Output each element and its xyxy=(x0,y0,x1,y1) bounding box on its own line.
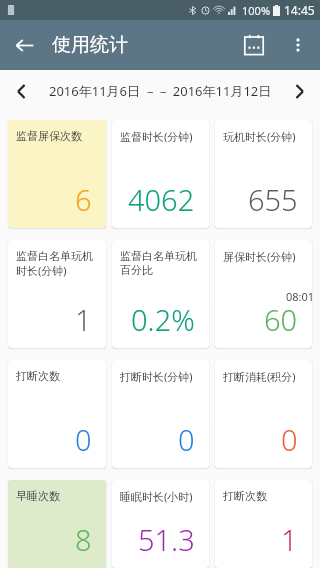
button[interactable]: 打断消耗(积分) xyxy=(215,360,312,468)
staticText: 早睡次数 xyxy=(16,489,60,503)
staticText: 60 xyxy=(264,300,298,339)
staticText: 2016年11月6日 －－ 2016年11月12日 xyxy=(49,82,272,100)
staticText: 使用统计 xyxy=(52,33,128,57)
staticText: 监督屏保次数 xyxy=(16,129,82,143)
staticText: 100% xyxy=(242,3,271,18)
staticText: 监督白名单玩机 时长(分钟) xyxy=(16,249,93,278)
staticText: 4062 xyxy=(128,180,195,219)
staticText: 打断消耗(积分) xyxy=(223,369,296,384)
staticText: 1 xyxy=(281,520,298,559)
staticText: 08:01 xyxy=(286,289,315,304)
staticText: 655 xyxy=(248,180,298,219)
button[interactable]: 打断次数 xyxy=(215,480,312,568)
button[interactable]: Next week xyxy=(278,70,320,112)
button[interactable]: Back xyxy=(0,21,48,69)
button[interactable]: Calendar xyxy=(230,21,278,69)
staticText: 睡眠时长(小时) xyxy=(120,489,193,504)
button[interactable]: 打断次数 xyxy=(8,360,106,468)
staticText: 51.3 xyxy=(138,520,195,559)
button[interactable]: 早睡次数 xyxy=(8,480,106,568)
button[interactable]: 打断时长(分钟) xyxy=(112,360,209,468)
staticText: 0 xyxy=(178,420,195,459)
button[interactable]: 监督时长(分钟) xyxy=(112,120,209,228)
button[interactable]: 玩机时长(分钟) xyxy=(215,120,312,228)
staticText: 打断次数 xyxy=(16,369,60,383)
button[interactable]: More options xyxy=(278,25,318,65)
staticText: 14:45 xyxy=(284,2,315,18)
staticText: 8 xyxy=(75,520,92,559)
button[interactable]: Previous week xyxy=(0,70,42,112)
button[interactable]: 监督白名单玩机 时长(分钟) xyxy=(8,240,106,348)
button[interactable]: 睡眠时长(小时) xyxy=(112,480,209,568)
staticText: 监督时长(分钟) xyxy=(120,129,193,144)
button[interactable]: 监督白名单玩机 百分比 xyxy=(112,240,209,348)
button[interactable]: 屏保时长(分钟) xyxy=(215,240,312,348)
staticText: 玩机时长(分钟) xyxy=(223,129,296,144)
staticText: 监督白名单玩机 百分比 xyxy=(120,249,197,277)
staticText: 屏保时长(分钟) xyxy=(223,249,296,264)
button[interactable]: 监督屏保次数 xyxy=(8,120,106,228)
staticText: 6 xyxy=(75,180,92,219)
staticText: 1 xyxy=(75,300,92,339)
staticText: 打断时长(分钟) xyxy=(120,369,193,384)
staticText: 0 xyxy=(281,420,298,459)
staticText: 打断次数 xyxy=(223,489,267,503)
staticText: 0.2% xyxy=(131,300,195,339)
staticText: 0 xyxy=(75,420,92,459)
